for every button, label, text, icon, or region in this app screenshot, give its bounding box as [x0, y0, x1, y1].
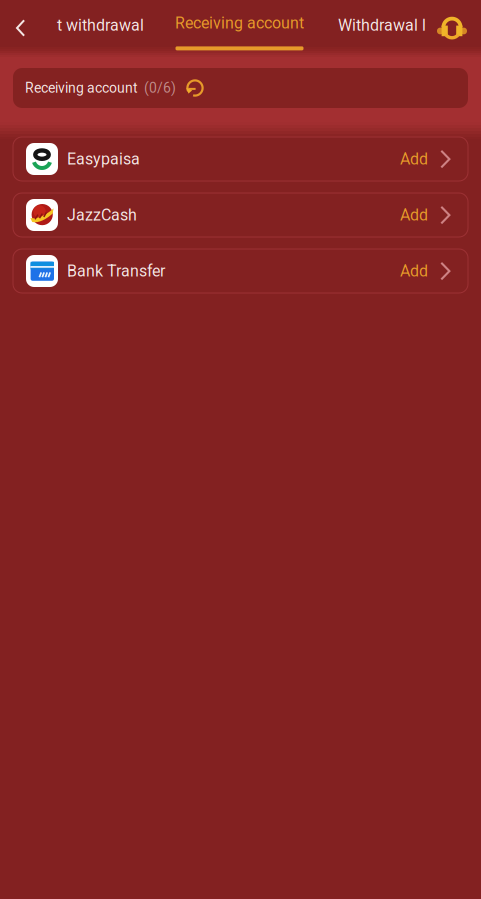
staticText: Receiving account [25, 80, 138, 96]
staticText: Add [400, 262, 428, 280]
staticText: t withdrawal [57, 16, 144, 35]
button[interactable]: t withdrawal [41, 0, 175, 56]
staticText: Add [400, 150, 428, 168]
staticText: Withdrawal l [338, 16, 426, 35]
staticText: Easypaisa [67, 150, 140, 168]
button[interactable]: Refresh [176, 72, 205, 104]
staticText: Bank Transfer [67, 262, 165, 280]
button[interactable]: Back [0, 0, 41, 56]
staticText: Add [400, 206, 428, 224]
staticText: (0/6) [144, 80, 176, 96]
button[interactable]: JazzCash [13, 193, 468, 237]
button[interactable]: Bank Transfer [13, 249, 468, 293]
button[interactable]: Receiving account [175, 0, 304, 56]
staticText: JazzCash [67, 206, 137, 224]
button[interactable]: Easypaisa [13, 137, 468, 181]
staticText: Receiving account [175, 14, 304, 32]
button[interactable]: Withdrawal l [304, 0, 434, 56]
button[interactable]: Customer support [434, 0, 470, 56]
